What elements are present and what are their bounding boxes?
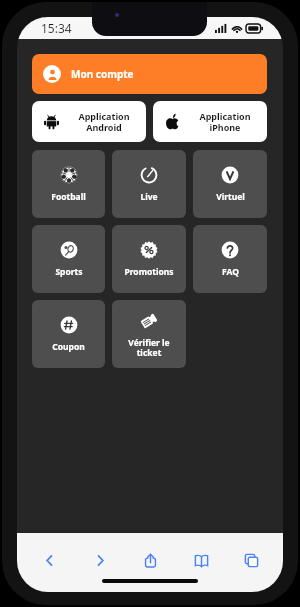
button[interactable]: Coupon: [32, 300, 105, 368]
button[interactable]: Application Android: [32, 101, 146, 142]
button[interactable]: Football: [32, 150, 105, 218]
staticText: Coupon: [52, 341, 85, 353]
staticText: Vérifier le ticket: [128, 337, 170, 358]
button[interactable]: Sports: [32, 225, 105, 293]
staticText: Live: [140, 191, 158, 203]
button[interactable]: Vérifier le ticket: [112, 300, 186, 368]
staticText: Football: [51, 191, 86, 203]
button[interactable]: Promotions: [112, 225, 186, 293]
button[interactable]: Tabs: [237, 546, 265, 574]
button[interactable]: Virtuel: [193, 150, 267, 218]
button[interactable]: Back: [35, 546, 63, 574]
button[interactable]: Mon compte: [32, 54, 267, 94]
staticText: FAQ: [222, 266, 239, 278]
staticText: Sports: [55, 266, 83, 278]
button[interactable]: FAQ: [193, 225, 267, 293]
staticText: Virtuel: [216, 191, 245, 203]
staticText: 15:34: [41, 20, 72, 36]
button[interactable]: Live: [112, 150, 186, 218]
staticText: Mon compte: [71, 67, 134, 81]
staticText: Application Android: [78, 110, 130, 133]
staticText: Promotions: [124, 266, 174, 278]
button[interactable]: Forward: [86, 546, 114, 574]
button[interactable]: Share: [136, 546, 164, 574]
button[interactable]: Bookmarks: [187, 546, 215, 574]
staticText: Application iPhone: [199, 110, 251, 133]
button[interactable]: Application iPhone: [153, 101, 267, 142]
